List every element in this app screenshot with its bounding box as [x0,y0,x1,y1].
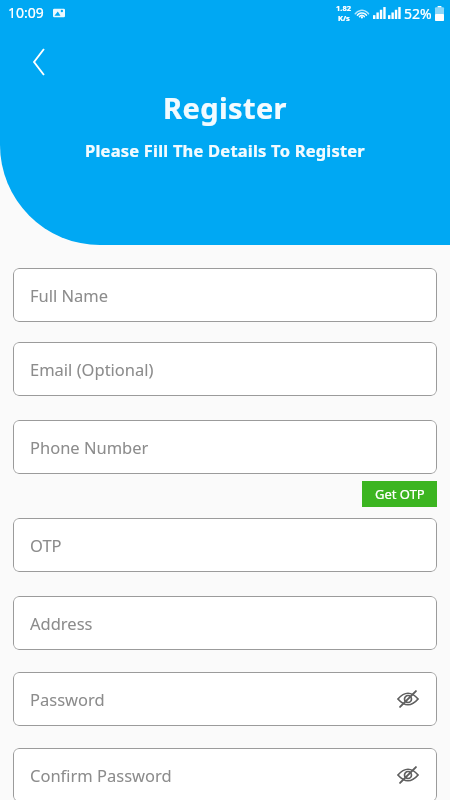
staticText: 1.82 [336,3,351,13]
staticText: Phone Number [30,436,149,458]
button[interactable]: Get OTP [362,481,437,507]
staticText: Password [30,688,105,710]
staticText: Full Name [30,284,109,306]
staticText: K/s [338,13,350,23]
staticText: Register [163,88,287,127]
staticText: OTP [30,534,62,556]
button[interactable]: OTP [13,518,437,572]
button[interactable]: Password [13,672,437,726]
staticText: Email (Optional) [30,358,154,380]
staticText: 52% [404,4,432,23]
button[interactable]: Show password [393,684,423,714]
staticText: Address [30,612,93,634]
button[interactable]: Show password [393,760,423,790]
staticText: Please Fill The Details To Register [85,139,365,161]
button[interactable]: Email (Optional) [13,342,437,396]
button[interactable]: Confirm Password [13,748,437,800]
staticText: Get OTP [375,485,425,503]
staticText: 10:09 [8,3,44,22]
button[interactable]: Phone Number [13,420,437,474]
button[interactable]: Full Name [13,268,437,322]
button[interactable]: Back [18,41,60,83]
button[interactable]: Address [13,596,437,650]
staticText: Confirm Password [30,764,172,786]
